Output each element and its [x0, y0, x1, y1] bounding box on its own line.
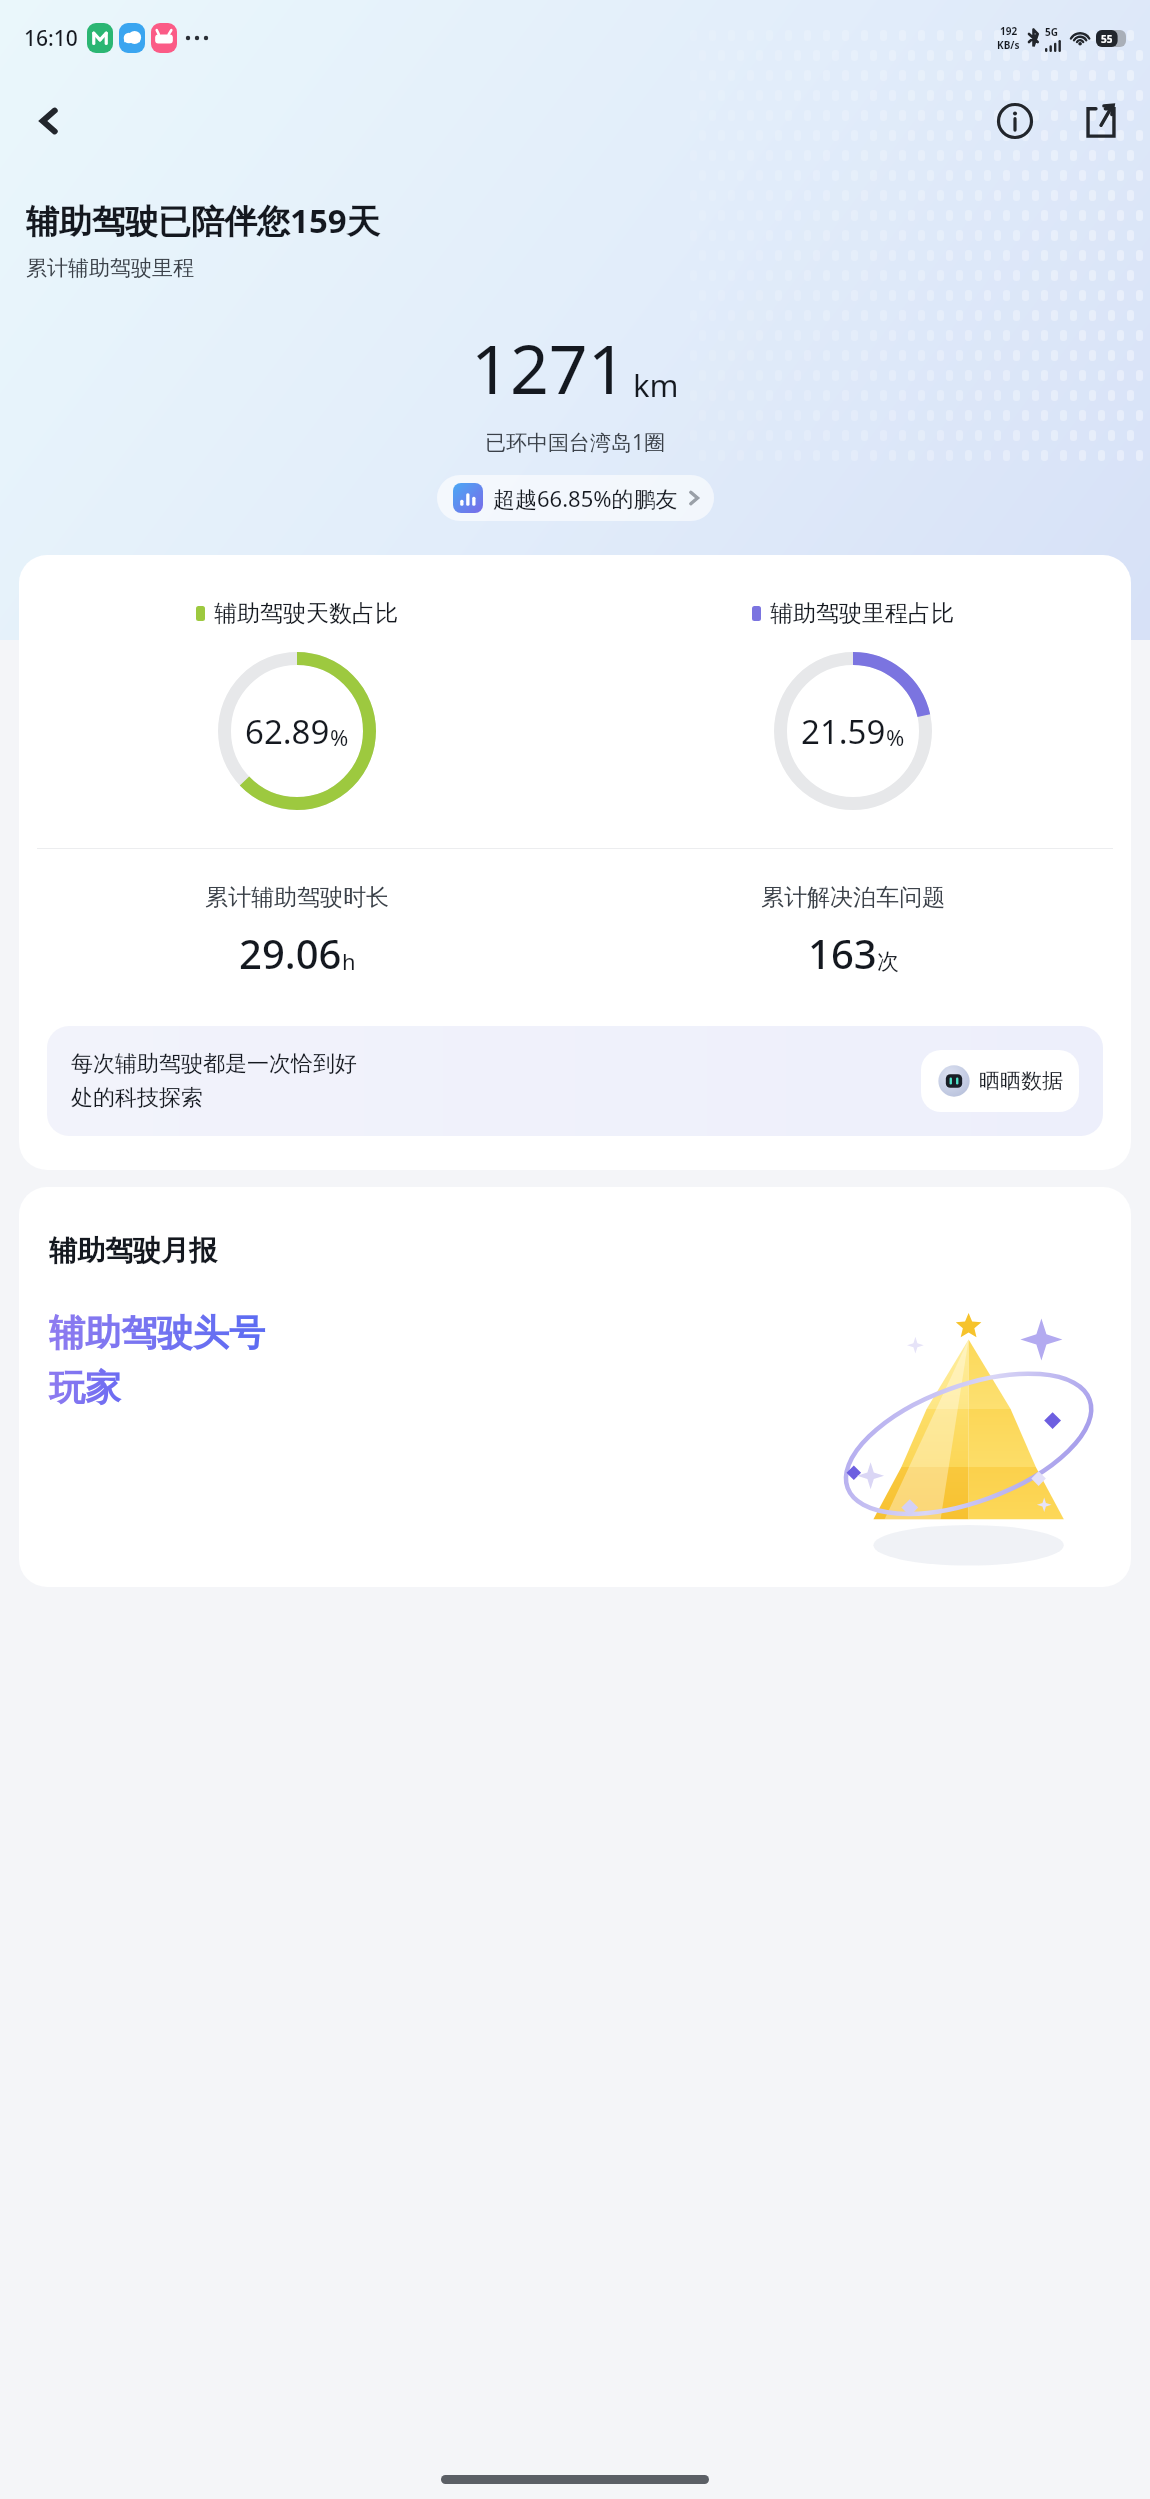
staticText: 55 [1101, 32, 1113, 46]
staticText: KB/s [997, 38, 1020, 52]
staticText: km [633, 364, 679, 406]
staticText: 辅助驾驶头号 [49, 1310, 265, 1355]
staticText: 62.89 [245, 709, 330, 754]
staticText: 29.06 [239, 926, 342, 980]
staticText: 超越66.85%的鹏友 [493, 483, 678, 513]
staticText: 192 [1000, 24, 1018, 38]
staticText: 辅助驾驶已陪伴您159天 [26, 198, 380, 243]
button[interactable]: 晒晒数据 [921, 1050, 1079, 1112]
staticText: 21.59 [801, 709, 886, 754]
button[interactable]: Info [980, 86, 1050, 156]
staticText: 辅助驾驶里程占比 [770, 599, 954, 628]
staticText: % [330, 722, 349, 752]
staticText: h [342, 946, 356, 976]
staticText: 处的科技探索 [71, 1084, 203, 1112]
staticText: 5G [1045, 25, 1058, 39]
staticText: 累计解决泊车问题 [761, 883, 945, 912]
button[interactable]: 每次辅助驾驶都是一次恰到好 [47, 1026, 1103, 1136]
staticText: 累计辅助驾驶里程 [26, 255, 194, 281]
staticText: 累计辅助驾驶时长 [205, 883, 389, 912]
staticText: 辅助驾驶月报 [49, 1233, 217, 1268]
staticText: 已环中国台湾岛1圈 [485, 428, 666, 457]
staticText: 玩家 [49, 1365, 121, 1410]
button[interactable]: 超越66.85%的鹏友 [437, 475, 714, 521]
staticText: % [886, 722, 905, 752]
staticText: 辅助驾驶天数占比 [214, 599, 398, 628]
staticText: 晒晒数据 [979, 1068, 1063, 1094]
staticText: 16:10 [24, 24, 78, 53]
button[interactable]: Share [1066, 86, 1136, 156]
staticText: 次 [877, 948, 899, 976]
button[interactable]: 辅助驾驶月报 [19, 1187, 1131, 1587]
button[interactable]: Back [14, 86, 84, 156]
staticText: 163 [808, 926, 877, 980]
staticText: 每次辅助驾驶都是一次恰到好 [71, 1050, 357, 1078]
staticText: 1271 [471, 321, 627, 414]
